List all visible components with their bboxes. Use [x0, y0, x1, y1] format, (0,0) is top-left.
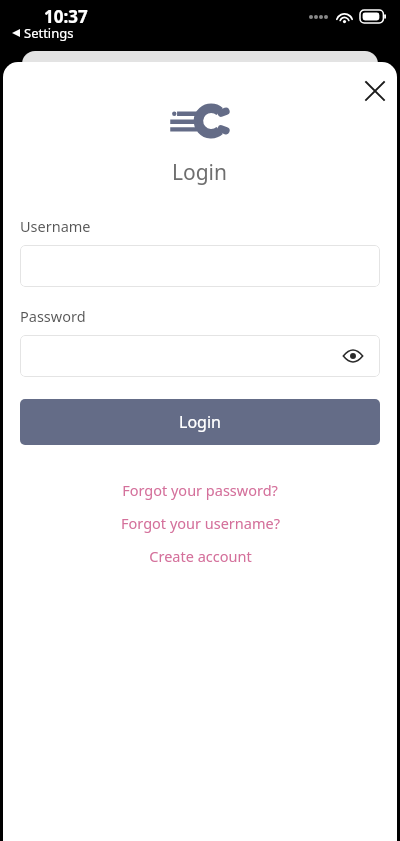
staticText: Password: [20, 306, 86, 326]
button[interactable]: Forgot your password?: [3, 480, 397, 500]
button[interactable]: Close: [358, 74, 392, 108]
staticText: Forgot your username?: [121, 513, 280, 533]
button[interactable]: [20, 245, 380, 287]
button[interactable]: Show password: [20, 335, 380, 377]
staticText: Create account: [149, 546, 252, 566]
staticText: Login: [172, 158, 228, 187]
button[interactable]: Create account: [3, 546, 397, 566]
button[interactable]: Forgot your username?: [3, 513, 397, 533]
staticText: Username: [20, 216, 91, 236]
button[interactable]: Show password: [336, 339, 370, 373]
staticText: 10:37: [44, 5, 88, 28]
staticText: Login: [179, 411, 221, 433]
button[interactable]: Login: [20, 399, 380, 445]
staticText: Settings: [24, 24, 74, 42]
staticText: Forgot your password?: [122, 480, 278, 500]
